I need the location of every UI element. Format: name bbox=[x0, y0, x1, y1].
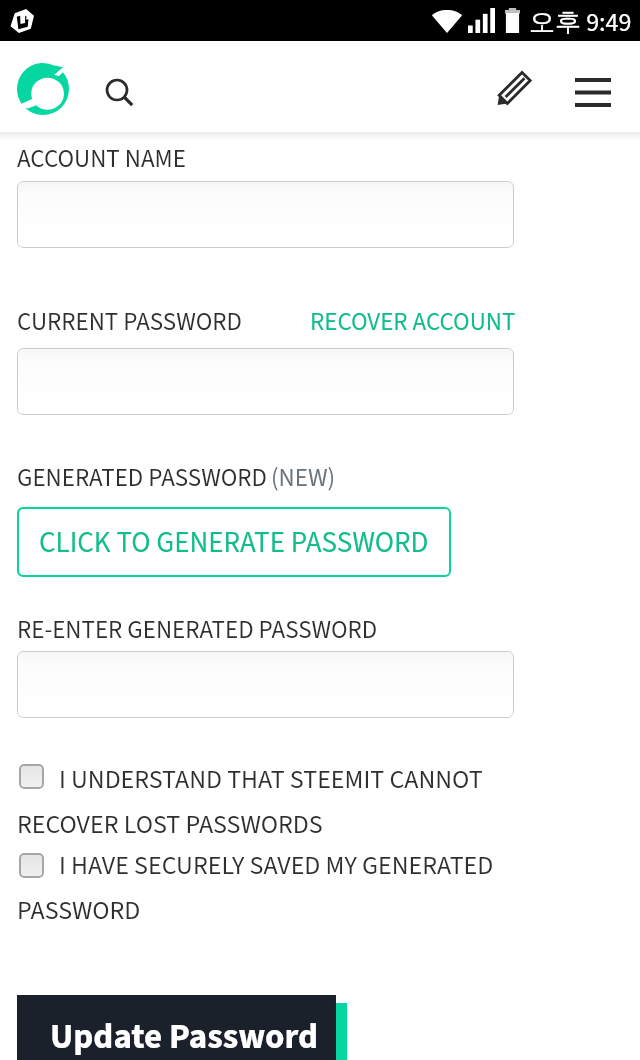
button[interactable]: Update Password bbox=[17, 995, 336, 1060]
button[interactable]: RECOVER ACCOUNT bbox=[310, 304, 516, 340]
staticText: 오후 9:49 bbox=[529, 4, 632, 41]
button[interactable]: Checkbox bbox=[19, 853, 44, 878]
staticText: RECOVER ACCOUNT bbox=[310, 304, 516, 340]
staticText: GENERATED PASSWORD bbox=[17, 460, 267, 496]
button[interactable]: CLICK TO GENERATE PASSWORD bbox=[17, 507, 451, 577]
button[interactable]: Input field bbox=[17, 181, 514, 248]
button[interactable]: I UNDERSTAND THAT STEEMIT CANNOT bbox=[59, 761, 483, 798]
button[interactable]: Search bbox=[94, 67, 146, 119]
button[interactable]: Input field bbox=[17, 651, 514, 718]
staticText: ACCOUNT NAME bbox=[17, 141, 186, 177]
staticText: RE-ENTER GENERATED PASSWORD bbox=[17, 612, 378, 648]
button[interactable]: Steemit home bbox=[12, 58, 74, 120]
button[interactable]: Input field bbox=[17, 348, 514, 415]
staticText: CURRENT PASSWORD bbox=[17, 304, 242, 340]
button[interactable]: I HAVE SECURELY SAVED MY GENERATED bbox=[59, 847, 494, 884]
staticText: RECOVER LOST PASSWORDS bbox=[17, 806, 323, 843]
staticText: PASSWORD bbox=[17, 892, 141, 929]
staticText: CLICK TO GENERATE PASSWORD bbox=[39, 522, 429, 563]
button[interactable]: Write post bbox=[485, 62, 539, 116]
button[interactable]: Menu bbox=[566, 65, 620, 119]
button[interactable]: Checkbox bbox=[19, 764, 44, 789]
staticText: I UNDERSTAND THAT STEEMIT CANNOT bbox=[59, 761, 483, 798]
staticText: I HAVE SECURELY SAVED MY GENERATED bbox=[59, 847, 494, 884]
staticText: Update Password bbox=[50, 1012, 319, 1060]
staticText: (NEW) bbox=[271, 460, 336, 496]
